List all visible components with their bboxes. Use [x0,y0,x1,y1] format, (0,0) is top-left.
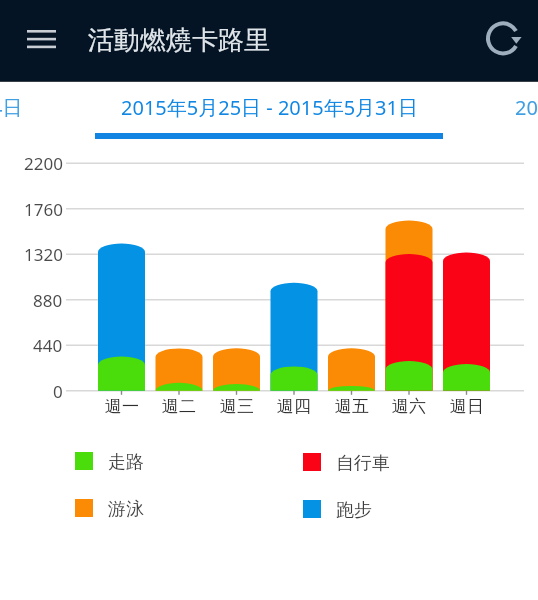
staticText: 440 [33,334,63,356]
staticText: 1760 [24,198,63,220]
staticText: 週四 [277,396,311,417]
staticText: 880 [33,289,63,311]
staticText: 走路 [108,451,144,471]
button[interactable] [479,14,527,62]
staticText: 4日 [0,94,23,121]
staticText: 週六 [392,396,426,417]
button[interactable]: 20 [515,94,538,121]
button[interactable] [16,14,66,64]
button[interactable]: 2015年5月25日 - 2015年5月31日 [0,92,538,122]
staticText: 週五 [335,396,369,417]
staticText: 週二 [162,396,196,417]
staticText: 0 [53,380,63,402]
staticText: 跑步 [336,499,372,519]
staticText: 1320 [24,243,63,265]
staticText: 2200 [24,152,63,174]
staticText: 活動燃燒卡路里 [88,24,270,57]
staticText: 週一 [105,396,139,417]
staticText: 自行車 [336,452,390,472]
button[interactable]: 4日 [0,92,35,122]
staticText: 週三 [220,396,254,417]
staticText: 2015年5月25日 - 2015年5月31日 [121,94,418,121]
staticText: 週日 [450,396,484,417]
staticText: 游泳 [108,498,144,518]
